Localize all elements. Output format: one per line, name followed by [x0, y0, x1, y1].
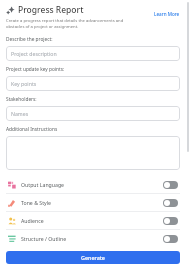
button[interactable]: Structure / Outline [6, 230, 180, 247]
staticText: Generate [81, 254, 105, 261]
button[interactable]: Project description [6, 46, 180, 61]
staticText: Tone & Style [21, 199, 163, 206]
staticText: Stakeholders: [6, 96, 37, 103]
staticText: Key points [11, 80, 37, 87]
staticText: Progress Report [18, 4, 84, 16]
button[interactable]: Names [6, 106, 180, 121]
button[interactable]: Output Language [6, 176, 180, 193]
staticText: Project description [11, 50, 57, 57]
button[interactable]: Toggle [163, 181, 178, 189]
button[interactable]: Toggle [163, 235, 178, 243]
button[interactable]: Learn More [152, 4, 180, 17]
staticText: Audience [21, 217, 163, 224]
button[interactable]: Toggle [163, 199, 178, 207]
staticText: Describe the project: [6, 36, 53, 43]
staticText: Structure / Outline [21, 235, 163, 242]
staticText: Additional Instructions [6, 126, 58, 133]
staticText: Output Language [21, 181, 163, 188]
button[interactable] [6, 136, 180, 170]
button[interactable]: Toggle [163, 217, 178, 225]
button[interactable]: Tone & Style [6, 194, 180, 211]
button[interactable]: Key points [6, 76, 180, 91]
button[interactable]: Generate [6, 251, 180, 264]
button[interactable]: Audience [6, 212, 180, 229]
staticText: Create a progress report that details th… [6, 18, 133, 30]
staticText: Project update key points: [6, 66, 65, 73]
staticText: Learn More [154, 11, 180, 17]
staticText: Names [11, 110, 29, 117]
